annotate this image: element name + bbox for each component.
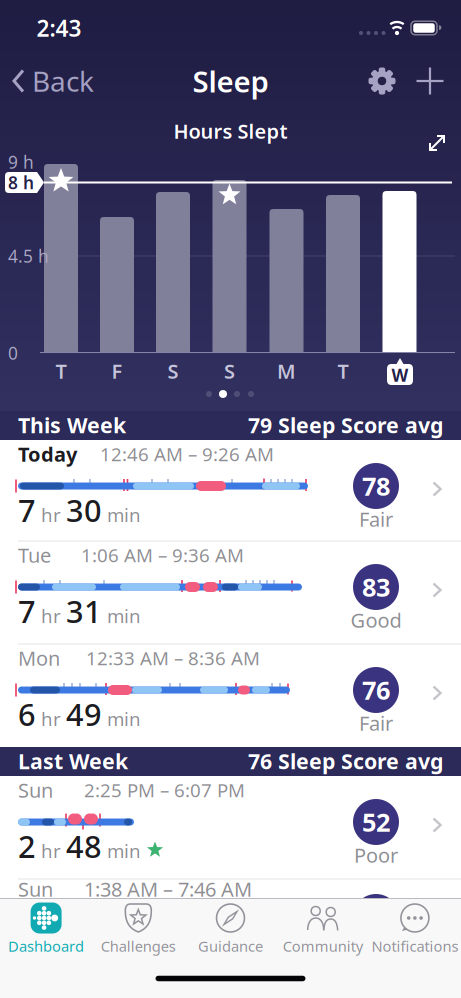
staticText: Fair — [359, 506, 393, 532]
staticText: Today — [18, 441, 77, 467]
button[interactable]: Add — [415, 66, 445, 96]
button[interactable]: Tue — [0, 541, 461, 642]
staticText: hr — [41, 603, 61, 628]
staticText: Hours Slept — [173, 118, 287, 144]
staticText: 12:33 AM – 8:36 AM — [86, 646, 260, 670]
staticText: Good — [350, 607, 401, 633]
staticText: 76 — [362, 673, 390, 707]
staticText: F — [111, 358, 122, 384]
button[interactable]: Dashboard — [1, 899, 91, 965]
staticText: Fair — [359, 710, 393, 736]
staticText: min — [107, 603, 141, 628]
staticText: Sun — [18, 876, 53, 902]
staticText: 2:43 — [36, 13, 81, 43]
staticText: M — [277, 358, 296, 384]
staticText: Mon — [18, 645, 60, 671]
staticText: Dashboard — [8, 936, 84, 956]
staticText: 9 h — [8, 150, 34, 173]
staticText: 76 Sleep Score avg — [248, 747, 443, 775]
staticText: 0 — [8, 341, 18, 364]
staticText: Challenges — [101, 936, 176, 956]
staticText: 7 — [18, 591, 36, 631]
staticText: Back — [32, 62, 94, 100]
staticText: Last Week — [18, 747, 128, 775]
staticText: T — [55, 358, 66, 384]
button[interactable]: Guidance — [185, 899, 275, 965]
button[interactable]: Notifications — [370, 899, 460, 965]
staticText: min — [107, 838, 141, 863]
staticText: 7 — [18, 490, 36, 530]
staticText: 30 — [66, 490, 102, 530]
staticText: This Week — [18, 411, 126, 439]
staticText: hr — [41, 706, 61, 731]
staticText: 31 — [66, 591, 102, 631]
staticText: 52 — [362, 805, 390, 839]
staticText: Tue — [18, 542, 51, 568]
staticText: S — [167, 358, 178, 384]
staticText: 12:46 AM – 9:26 AM — [100, 442, 274, 466]
staticText: 4.5 h — [8, 244, 49, 267]
staticText: 1:06 AM – 9:36 AM — [81, 543, 244, 567]
staticText: S — [224, 358, 235, 384]
staticText: hr — [41, 838, 61, 863]
button[interactable]: Settings — [367, 66, 397, 96]
staticText: 48 — [66, 826, 102, 866]
staticText: Guidance — [198, 936, 263, 956]
staticText: 6 — [18, 694, 36, 734]
staticText: 79 Sleep Score avg — [248, 411, 443, 439]
staticText: 83 — [362, 570, 390, 604]
staticText: min — [107, 706, 141, 731]
staticText: 1:38 AM – 7:46 AM — [84, 876, 252, 902]
staticText: 78 — [362, 469, 390, 503]
staticText: Notifications — [371, 936, 458, 956]
staticText: 2:25 PM – 6:07 PM — [84, 778, 245, 802]
staticText: 8 h — [8, 171, 34, 194]
staticText: W — [391, 363, 408, 386]
button[interactable]: Mon — [0, 644, 461, 745]
staticText: Sun — [18, 777, 53, 803]
staticText: 2 — [18, 826, 36, 866]
button[interactable]: Challenges — [93, 899, 183, 965]
staticText: Poor — [354, 842, 398, 868]
button[interactable]: Today — [0, 440, 461, 541]
staticText: Community — [283, 936, 363, 956]
staticText: T — [337, 358, 348, 384]
staticText: Sleep — [192, 61, 268, 100]
staticText: min — [107, 502, 141, 527]
button[interactable]: Community — [278, 899, 368, 965]
button[interactable]: Expand chart — [428, 134, 446, 152]
staticText: hr — [41, 502, 61, 527]
button[interactable]: Sun — [0, 776, 461, 877]
staticText: 49 — [66, 694, 102, 734]
button[interactable]: Back — [12, 61, 102, 101]
